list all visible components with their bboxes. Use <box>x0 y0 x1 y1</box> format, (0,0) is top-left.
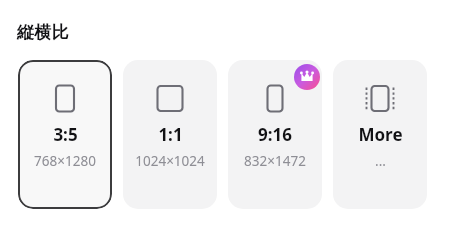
button[interactable]: 9:16 <box>228 60 322 209</box>
button[interactable]: 3:5 <box>18 60 112 209</box>
staticText: ... <box>375 152 386 170</box>
staticText: 1024×1024 <box>135 152 205 170</box>
other: Pro feature <box>294 64 320 90</box>
button[interactable]: 1:1 <box>123 60 217 209</box>
staticText: 9:16 <box>258 123 292 146</box>
staticText: More <box>358 123 403 146</box>
staticText: 縦横比 <box>17 22 69 43</box>
staticText: 3:5 <box>53 123 78 146</box>
button[interactable]: More <box>333 60 427 209</box>
staticText: 1:1 <box>158 123 183 146</box>
staticText: 768×1280 <box>34 152 96 170</box>
staticText: 832×1472 <box>244 152 306 170</box>
